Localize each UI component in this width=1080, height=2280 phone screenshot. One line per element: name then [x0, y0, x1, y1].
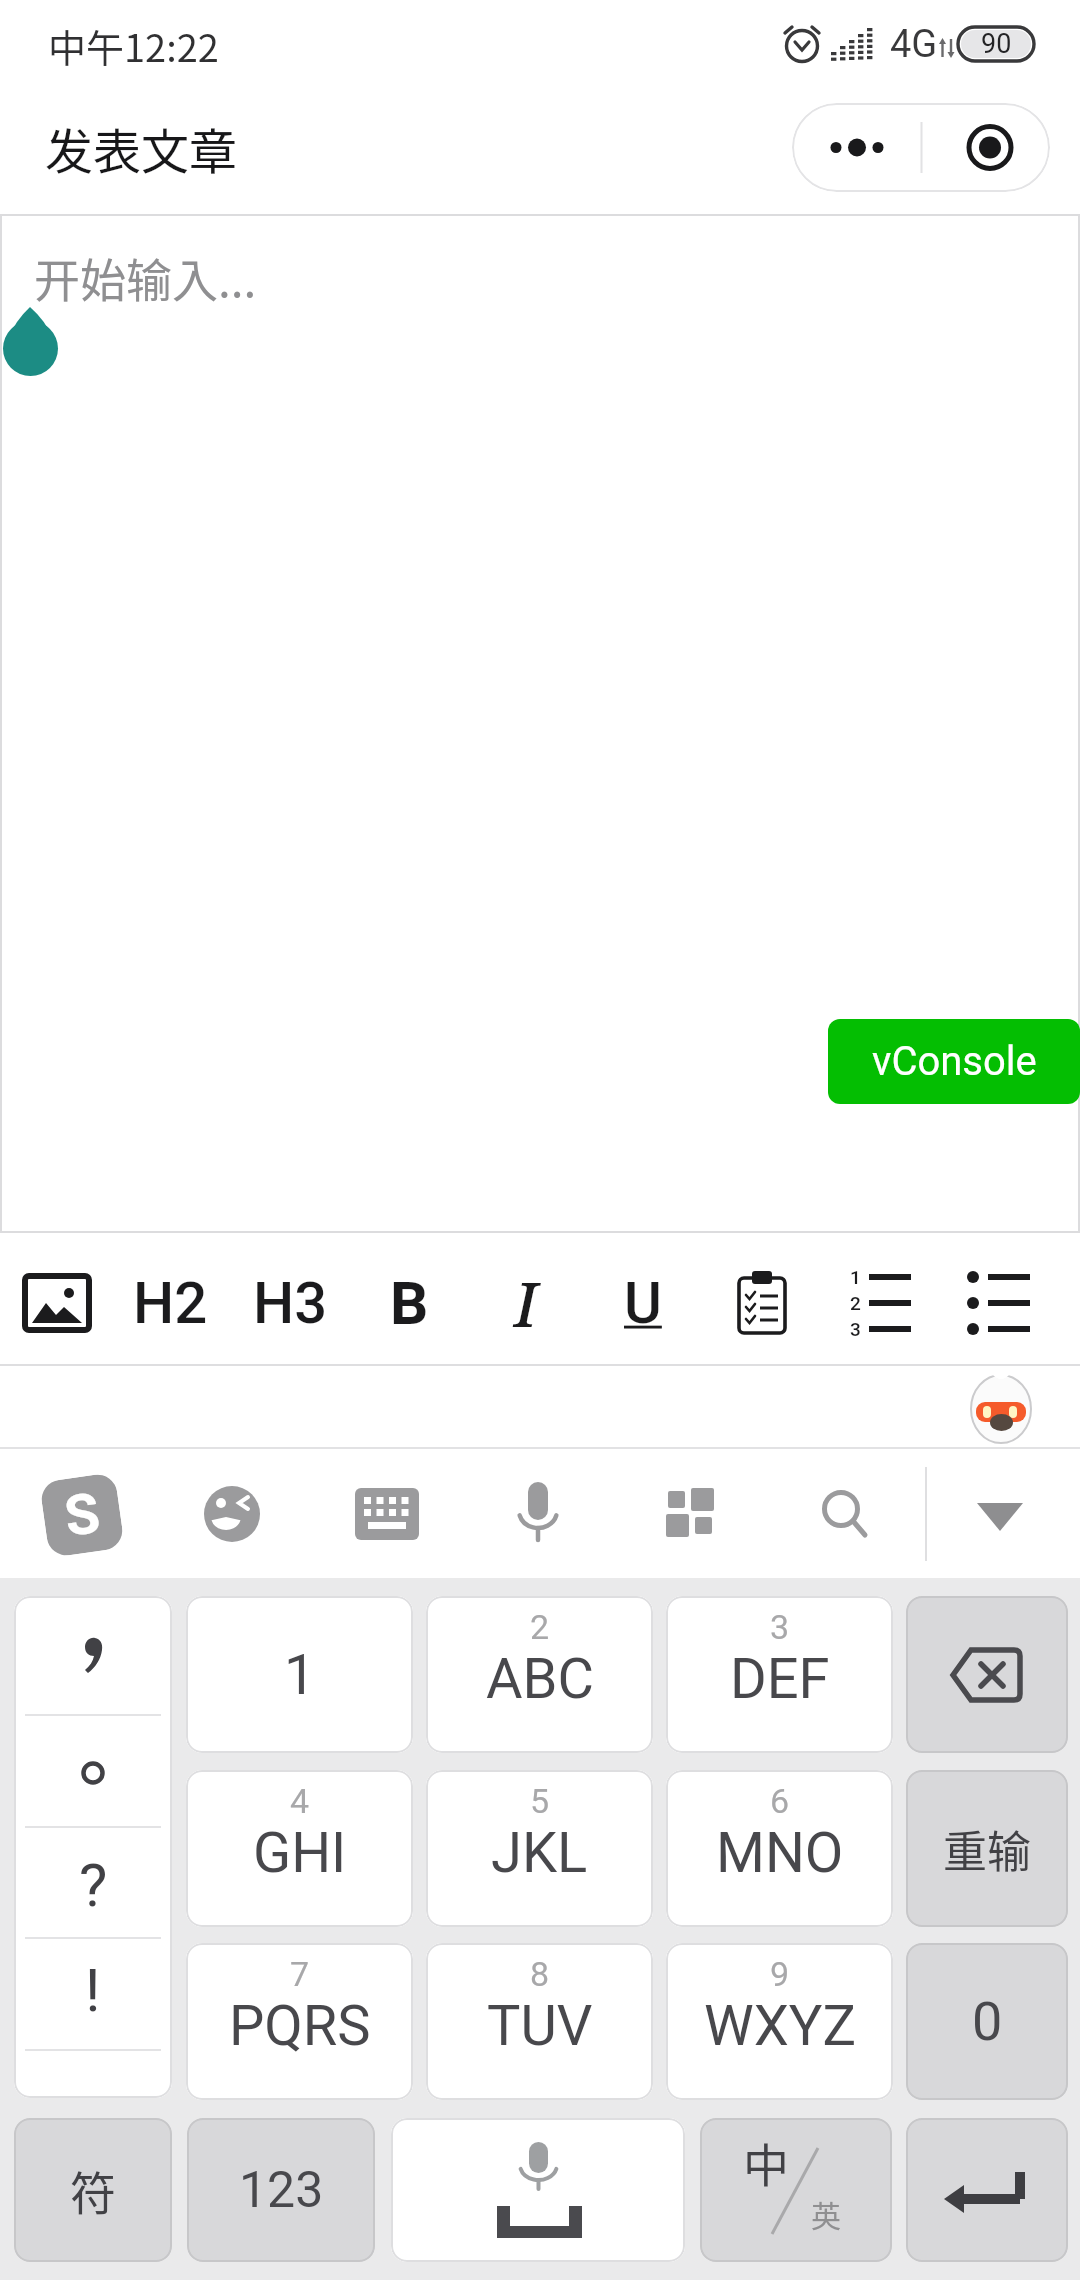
- staticText: H2: [133, 1269, 208, 1337]
- staticText: 7: [290, 1954, 310, 1994]
- button[interactable]: [707, 1243, 817, 1363]
- staticText: 4: [290, 1781, 310, 1821]
- button[interactable]: 符: [14, 2118, 172, 2262]
- button[interactable]: [943, 1243, 1053, 1363]
- staticText: 3: [850, 1318, 861, 1340]
- staticText: !: [85, 1955, 101, 2025]
- button[interactable]: 123: [187, 2118, 375, 2262]
- staticText: 1: [850, 1266, 861, 1288]
- staticText: 5: [530, 1781, 550, 1821]
- staticText: S: [61, 1480, 104, 1550]
- button[interactable]: 4: [186, 1770, 413, 1927]
- button[interactable]: 5: [426, 1770, 653, 1927]
- button[interactable]: [355, 1488, 419, 1540]
- staticText: 0: [972, 1990, 1003, 2053]
- button[interactable]: [12, 1243, 102, 1363]
- staticText: 9: [770, 1954, 790, 1994]
- staticText: 中午12:22: [48, 18, 219, 73]
- staticText: ?: [79, 1850, 108, 1920]
- button[interactable]: [820, 1488, 872, 1544]
- button[interactable]: [0, 214, 1080, 1233]
- button[interactable]: [391, 2118, 685, 2262]
- button[interactable]: 7: [186, 1943, 413, 2100]
- staticText: WXYZ: [704, 1993, 856, 2059]
- staticText: DEF: [730, 1646, 830, 1712]
- staticText: 6: [770, 1781, 790, 1821]
- button[interactable]: 1: [186, 1596, 413, 1753]
- button[interactable]: [906, 2118, 1068, 2262]
- button[interactable]: [202, 1484, 262, 1544]
- staticText: 英: [811, 2192, 841, 2235]
- staticText: H3: [253, 1269, 328, 1337]
- staticText: 开始输入...: [34, 244, 257, 311]
- staticText: vConsole: [872, 1038, 1037, 1085]
- button[interactable]: [906, 1596, 1068, 1753]
- staticText: 1: [284, 1642, 316, 1708]
- staticText: B: [390, 1268, 429, 1338]
- staticText: 重输: [943, 1817, 1031, 1881]
- button[interactable]: S: [39, 1472, 125, 1558]
- button[interactable]: 重输: [906, 1770, 1068, 1927]
- button[interactable]: 6: [666, 1770, 893, 1927]
- staticText: 4G: [890, 22, 938, 64]
- staticText: I: [514, 1261, 538, 1345]
- button[interactable]: ?: [14, 1596, 172, 2098]
- button[interactable]: [792, 103, 921, 192]
- button[interactable]: [666, 1488, 720, 1542]
- button[interactable]: 0: [906, 1943, 1068, 2100]
- button[interactable]: vConsole: [828, 1019, 1080, 1104]
- staticText: 中: [743, 2129, 789, 2196]
- staticText: MNO: [716, 1820, 844, 1886]
- staticText: PQRS: [229, 1993, 371, 2059]
- staticText: 123: [239, 2161, 324, 2220]
- staticText: TUV: [487, 1993, 593, 2059]
- staticText: ABC: [486, 1646, 594, 1712]
- staticText: 发表文章: [45, 113, 238, 183]
- button[interactable]: [968, 1372, 1034, 1446]
- button[interactable]: 3: [666, 1596, 893, 1753]
- staticText: 符: [70, 2157, 116, 2224]
- button[interactable]: 2: [426, 1596, 653, 1753]
- button[interactable]: 9: [666, 1943, 893, 2100]
- button[interactable]: [921, 103, 1050, 192]
- button[interactable]: 中: [700, 2118, 892, 2262]
- button[interactable]: [966, 1492, 1034, 1542]
- staticText: 2: [530, 1607, 550, 1647]
- staticText: U: [624, 1269, 662, 1337]
- button[interactable]: 8: [426, 1943, 653, 2100]
- staticText: GHI: [253, 1820, 347, 1886]
- staticText: 90: [981, 28, 1012, 60]
- staticText: 8: [530, 1954, 550, 1994]
- staticText: JKL: [491, 1820, 588, 1886]
- staticText: 2: [850, 1292, 861, 1314]
- button[interactable]: [515, 1482, 561, 1544]
- staticText: 3: [770, 1607, 790, 1647]
- button[interactable]: 1: [825, 1243, 935, 1363]
